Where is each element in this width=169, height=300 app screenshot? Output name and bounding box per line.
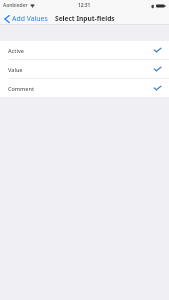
- staticText: Add Values: [12, 14, 48, 23]
- button[interactable]: Comment: [0, 79, 169, 97]
- staticText: 12:31: [78, 2, 91, 9]
- staticText: Comment: [8, 85, 34, 92]
- button[interactable]: Add Values: [0, 14, 52, 23]
- button[interactable]: Active: [0, 41, 169, 60]
- button[interactable]: Value: [0, 60, 169, 79]
- staticText: Active: [8, 47, 24, 54]
- staticText: Aanbieder: [3, 2, 28, 9]
- staticText: Value: [8, 66, 23, 73]
- staticText: Select Input-fields: [55, 14, 115, 23]
